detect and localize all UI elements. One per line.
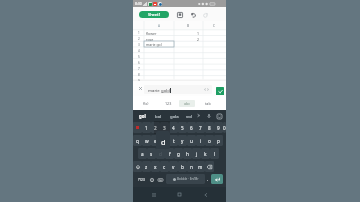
staticText: Sheet1	[148, 12, 161, 17]
button[interactable]: w	[142, 135, 151, 146]
staticText: h	[186, 151, 189, 157]
button[interactable]: 4	[169, 122, 178, 133]
button[interactable]: n	[187, 161, 196, 172]
button[interactable]: d	[156, 148, 165, 159]
staticText: rose	[146, 37, 154, 42]
staticText: B	[187, 24, 190, 28]
button[interactable]: Backspace	[205, 161, 214, 172]
staticText: i	[200, 138, 202, 144]
button[interactable]: Home	[174, 189, 185, 200]
button[interactable]: Voice input	[205, 112, 213, 120]
button[interactable]: Back	[200, 189, 211, 200]
staticText: d	[161, 137, 166, 147]
staticText: q	[136, 138, 139, 144]
button[interactable]: Enter	[211, 174, 223, 184]
button[interactable]: Sheets	[175, 10, 184, 19]
button[interactable]: 3	[160, 122, 169, 133]
staticText: 4	[172, 125, 175, 131]
button[interactable]: g	[174, 148, 183, 159]
button[interactable]: f	[165, 148, 174, 159]
button[interactable]: Sheet1	[139, 11, 169, 18]
button[interactable]: f(x)	[138, 96, 154, 110]
button[interactable]: Recents	[148, 189, 159, 200]
button[interactable]: 8	[205, 122, 214, 133]
button[interactable]: Stickers	[215, 112, 223, 120]
button[interactable]: t	[169, 135, 178, 146]
staticText: f	[169, 151, 171, 157]
staticText: 1	[138, 31, 140, 35]
button[interactable]: Redo	[201, 10, 210, 19]
staticText: w	[145, 138, 149, 144]
staticText: gold	[161, 87, 170, 93]
button[interactable]: 9	[214, 122, 223, 133]
button[interactable]: gol	[139, 113, 146, 119]
button[interactable]: l	[210, 148, 219, 159]
button[interactable]: 0	[223, 122, 226, 133]
button[interactable]: ?123	[136, 173, 146, 186]
button[interactable]: u	[187, 135, 196, 146]
button[interactable]: Cancel	[137, 85, 144, 92]
button[interactable]: vol	[186, 113, 192, 119]
staticText: 8	[138, 73, 140, 77]
button[interactable]: 1	[142, 122, 151, 133]
button[interactable]: x	[151, 161, 160, 172]
button[interactable]: s	[147, 148, 156, 159]
button[interactable]: .	[205, 173, 211, 186]
button[interactable]: p	[214, 135, 223, 146]
button[interactable]: Clipboard	[133, 122, 142, 133]
button[interactable]: q	[133, 135, 142, 146]
button[interactable]: i	[196, 135, 205, 146]
button[interactable]: y	[178, 135, 187, 146]
staticText: Bobble · En/Mr	[177, 177, 199, 181]
button[interactable]: 6	[187, 122, 196, 133]
button[interactable]: c	[160, 161, 169, 172]
button[interactable]: 7	[196, 122, 205, 133]
staticText: l	[214, 151, 216, 157]
staticText: p	[217, 138, 220, 144]
button[interactable]: 5	[178, 122, 187, 133]
button[interactable]: b	[178, 161, 187, 172]
button[interactable]: Bobble · En/Mr	[166, 174, 205, 184]
button[interactable]: tab	[200, 96, 216, 110]
button[interactable]: More suggestions	[196, 113, 201, 118]
staticText: 3	[138, 43, 140, 47]
button[interactable]: abc	[179, 96, 195, 110]
button[interactable]: Shift	[133, 161, 142, 172]
button[interactable]: h	[183, 148, 192, 159]
staticText: flower	[146, 31, 157, 36]
staticText: r	[164, 138, 166, 144]
staticText: x	[154, 164, 157, 170]
staticText: m	[198, 164, 203, 170]
button[interactable]: Undo	[188, 10, 197, 19]
button[interactable]: a	[138, 148, 147, 159]
staticText: c	[163, 164, 166, 170]
button[interactable]: v	[169, 161, 178, 172]
staticText: 5	[138, 55, 140, 59]
button[interactable]: marie gol	[144, 41, 174, 47]
button[interactable]: Accept	[216, 87, 224, 95]
button[interactable]: Emoji	[147, 173, 156, 186]
staticText: 8:30	[135, 1, 142, 6]
button[interactable]: 2	[151, 122, 160, 133]
button[interactable]: o	[205, 135, 214, 146]
button[interactable]: bol	[155, 113, 162, 119]
button[interactable]: gola	[170, 113, 179, 119]
button[interactable]: z	[142, 161, 151, 172]
button[interactable]: k	[201, 148, 210, 159]
staticText: A	[158, 24, 161, 28]
staticText: f(x)	[143, 101, 149, 106]
staticText: ?123	[138, 178, 145, 182]
button[interactable]: r	[160, 135, 169, 146]
staticText: 6	[190, 125, 193, 131]
button[interactable]: j	[192, 148, 201, 159]
staticText: 7	[138, 67, 140, 71]
button[interactable]: Keyboard settings	[156, 173, 165, 186]
staticText: u	[190, 138, 193, 144]
button[interactable]: marie	[144, 85, 212, 94]
staticText: 123	[165, 101, 172, 106]
button[interactable]: 123	[160, 96, 176, 110]
staticText: 9	[217, 125, 220, 131]
staticText: 8	[208, 125, 211, 131]
button[interactable]: m	[196, 161, 205, 172]
button[interactable]: e	[151, 135, 160, 146]
